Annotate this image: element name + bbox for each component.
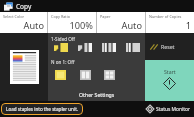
staticText: 100% bbox=[48, 19, 93, 32]
button[interactable]: 2-sided to 2-sided bbox=[97, 41, 121, 53]
staticText: Number of Copies bbox=[149, 14, 182, 19]
button[interactable]: Start bbox=[145, 60, 194, 101]
button[interactable]: 4 on 1 bbox=[97, 68, 121, 81]
staticText: 1-Sided Off bbox=[51, 36, 75, 42]
staticText: Copy bbox=[16, 2, 32, 11]
button[interactable]: 1-sided to 2-sided bbox=[73, 41, 97, 53]
staticText: Auto bbox=[0, 19, 44, 32]
staticText: Status Monitor bbox=[156, 106, 191, 113]
button[interactable]: Paper bbox=[97, 12, 145, 33]
staticText: Start bbox=[164, 68, 176, 75]
staticText: Paper bbox=[100, 14, 111, 19]
button[interactable]: N on 1 off bbox=[48, 68, 73, 81]
button[interactable]: Status Monitor bbox=[146, 105, 191, 113]
button[interactable]: 1-sided to 1-sided bbox=[48, 41, 73, 53]
button[interactable]: 2-sided to 1-sided bbox=[121, 41, 145, 53]
button[interactable]: Other Settings bbox=[48, 87, 145, 101]
staticText: Select Color bbox=[3, 14, 25, 19]
staticText: 1 bbox=[146, 19, 191, 32]
staticText: Copy Ratio bbox=[51, 14, 71, 19]
button[interactable]: Number of Copies bbox=[146, 12, 194, 33]
staticText: N on 1: Off bbox=[51, 59, 75, 65]
button[interactable]: Copy Ratio bbox=[48, 12, 96, 33]
button[interactable]: Select Color bbox=[0, 12, 47, 33]
button[interactable]: Load staples into the stapler unit. bbox=[1, 103, 83, 115]
button[interactable]: 2 on 1 bbox=[73, 68, 97, 81]
staticText: Reset bbox=[161, 43, 175, 50]
staticText: Other Settings bbox=[79, 91, 115, 98]
button[interactable]: Reset bbox=[145, 33, 194, 60]
staticText: Load staples into the stapler unit. bbox=[6, 106, 79, 112]
staticText: Auto bbox=[97, 19, 142, 32]
